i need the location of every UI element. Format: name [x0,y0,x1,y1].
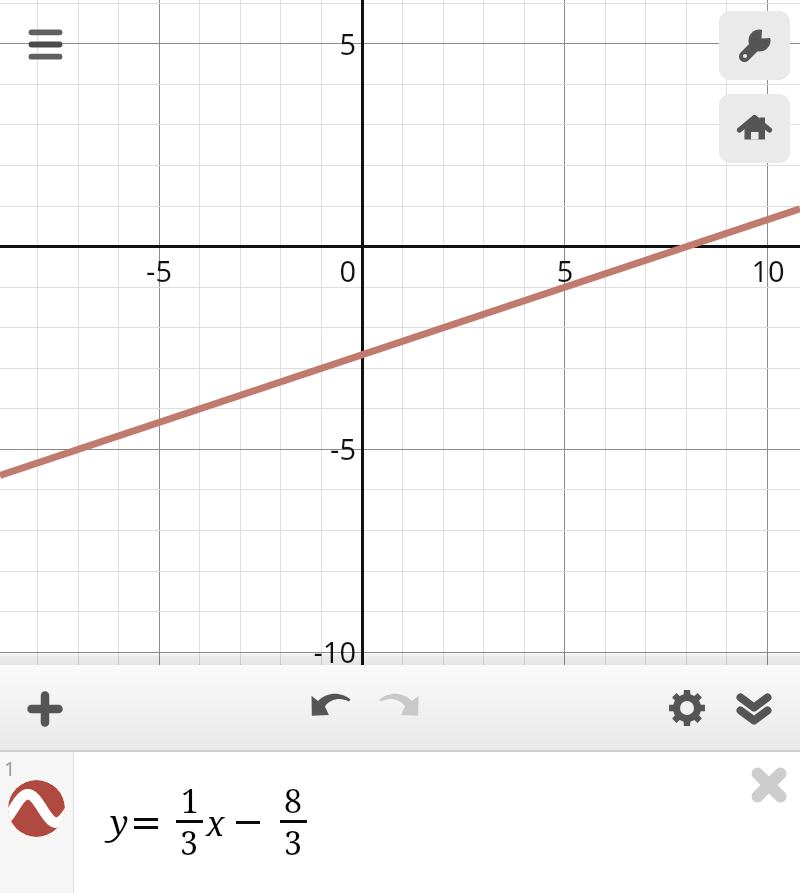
button[interactable]: Undo [302,676,360,734]
staticText: 10 [728,251,800,290]
staticText: 5 [266,24,356,63]
staticText: 1 [4,755,16,782]
staticText: -5 [266,429,356,468]
button[interactable]: Delete expression [741,757,797,813]
staticText: y [110,798,129,846]
staticText: x [206,800,225,846]
staticText: -5 [119,251,199,290]
staticText: 0 [276,251,356,290]
button[interactable]: Settings [658,679,716,737]
button[interactable]: Home [719,94,790,163]
staticText: -10 [266,632,356,671]
staticText: 3 [180,821,198,865]
button[interactable]: Tools [719,11,790,80]
staticText: 1 [181,779,199,823]
button[interactable]: Add expression [16,680,74,738]
staticText: 5 [525,251,605,290]
button[interactable]: Menu [17,16,74,73]
staticText: 3 [284,821,302,865]
button[interactable]: Collapse panel [725,680,783,738]
button[interactable]: Redo [370,676,428,734]
staticText: 8 [284,779,302,823]
